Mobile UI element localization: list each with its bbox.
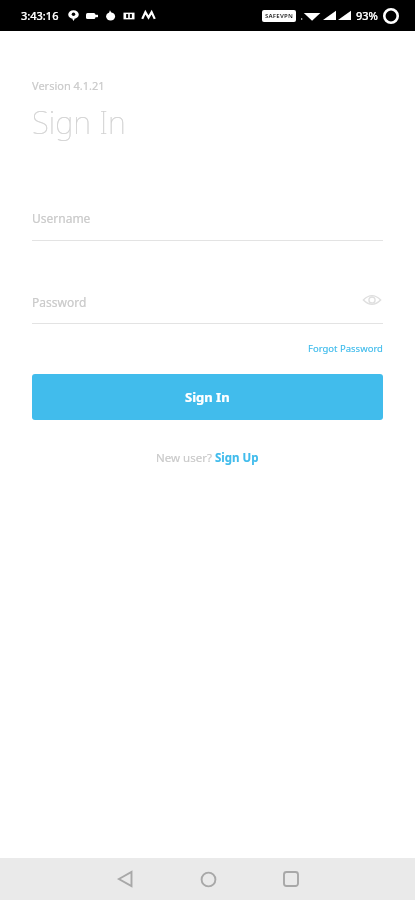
button[interactable]: Sign In bbox=[32, 374, 383, 420]
staticText: 3:43:16 bbox=[21, 8, 59, 23]
button[interactable]: Back bbox=[104, 858, 146, 900]
staticText: Sign In bbox=[185, 388, 230, 406]
button[interactable]: Home bbox=[187, 858, 229, 900]
button[interactable]: Recents bbox=[270, 858, 312, 900]
staticText: Username bbox=[32, 210, 91, 226]
staticText: 93% bbox=[356, 8, 378, 23]
staticText: New user? bbox=[156, 450, 215, 466]
button[interactable]: Forgot Password bbox=[308, 342, 383, 355]
staticText: SAFEVPN bbox=[265, 12, 294, 20]
button[interactable]: Show password bbox=[361, 289, 383, 311]
button[interactable]: Sign Up bbox=[215, 450, 259, 466]
staticText: Version 4.1.21 bbox=[32, 78, 105, 93]
staticText: Sign In bbox=[32, 101, 126, 143]
staticText: Password bbox=[32, 294, 87, 310]
staticText: Sign Up bbox=[215, 450, 259, 466]
staticText: Forgot Password bbox=[308, 342, 383, 355]
